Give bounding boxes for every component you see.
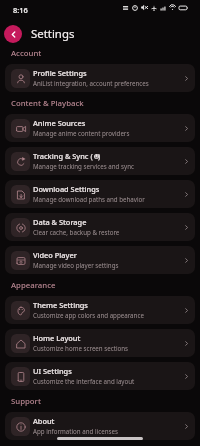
staticText: App information and licenses [33, 427, 118, 435]
button[interactable]: Home Layout [5, 329, 195, 357]
staticText: Customize the interface and layout [33, 377, 135, 385]
staticText: ) [98, 151, 101, 161]
staticText: Tracking & Sync ( [33, 151, 93, 161]
staticText: Data & Storage [33, 217, 87, 227]
staticText: Appearance [11, 280, 56, 291]
button[interactable]: Tracking & Sync ( [5, 147, 195, 175]
staticText: 8:16 [13, 5, 28, 15]
staticText: Anime Sources [33, 118, 86, 128]
staticText: Home Layout [33, 333, 81, 343]
staticText: Customize app colors and appearance [33, 311, 144, 319]
button[interactable]: Theme Settings [5, 296, 195, 324]
staticText: Manage tracking services and sync [33, 162, 134, 170]
staticText: Clear cache, backup & restore [33, 228, 120, 236]
staticText: Video Player [33, 250, 77, 260]
button[interactable]: Download Settings [5, 180, 195, 208]
staticText: AniList integration, account preferences [33, 79, 149, 87]
button[interactable]: Back [4, 25, 22, 43]
staticText: Content & Playback [11, 98, 84, 109]
button[interactable]: Data & Storage [5, 213, 195, 241]
staticText: About [33, 416, 55, 426]
staticText: Manage anime content providers [33, 129, 130, 137]
staticText: Support [11, 396, 41, 407]
staticText: Account [11, 48, 42, 59]
button[interactable]: About [5, 412, 195, 440]
staticText: Settings [31, 26, 75, 42]
staticText: Profile Settings [33, 68, 87, 78]
staticText: Customize home screen sections [33, 344, 129, 352]
button[interactable]: Anime Sources [5, 114, 195, 142]
staticText: Manage video player settings [33, 261, 119, 269]
button[interactable]: Video Player [5, 246, 195, 274]
staticText: Manage download paths and behavior [33, 195, 145, 203]
staticText: Download Settings [33, 184, 100, 194]
button[interactable]: Profile Settings [5, 64, 195, 92]
staticText: Theme Settings [33, 300, 88, 310]
staticText: UI Settings [33, 366, 72, 376]
button[interactable]: UI Settings [5, 362, 195, 390]
